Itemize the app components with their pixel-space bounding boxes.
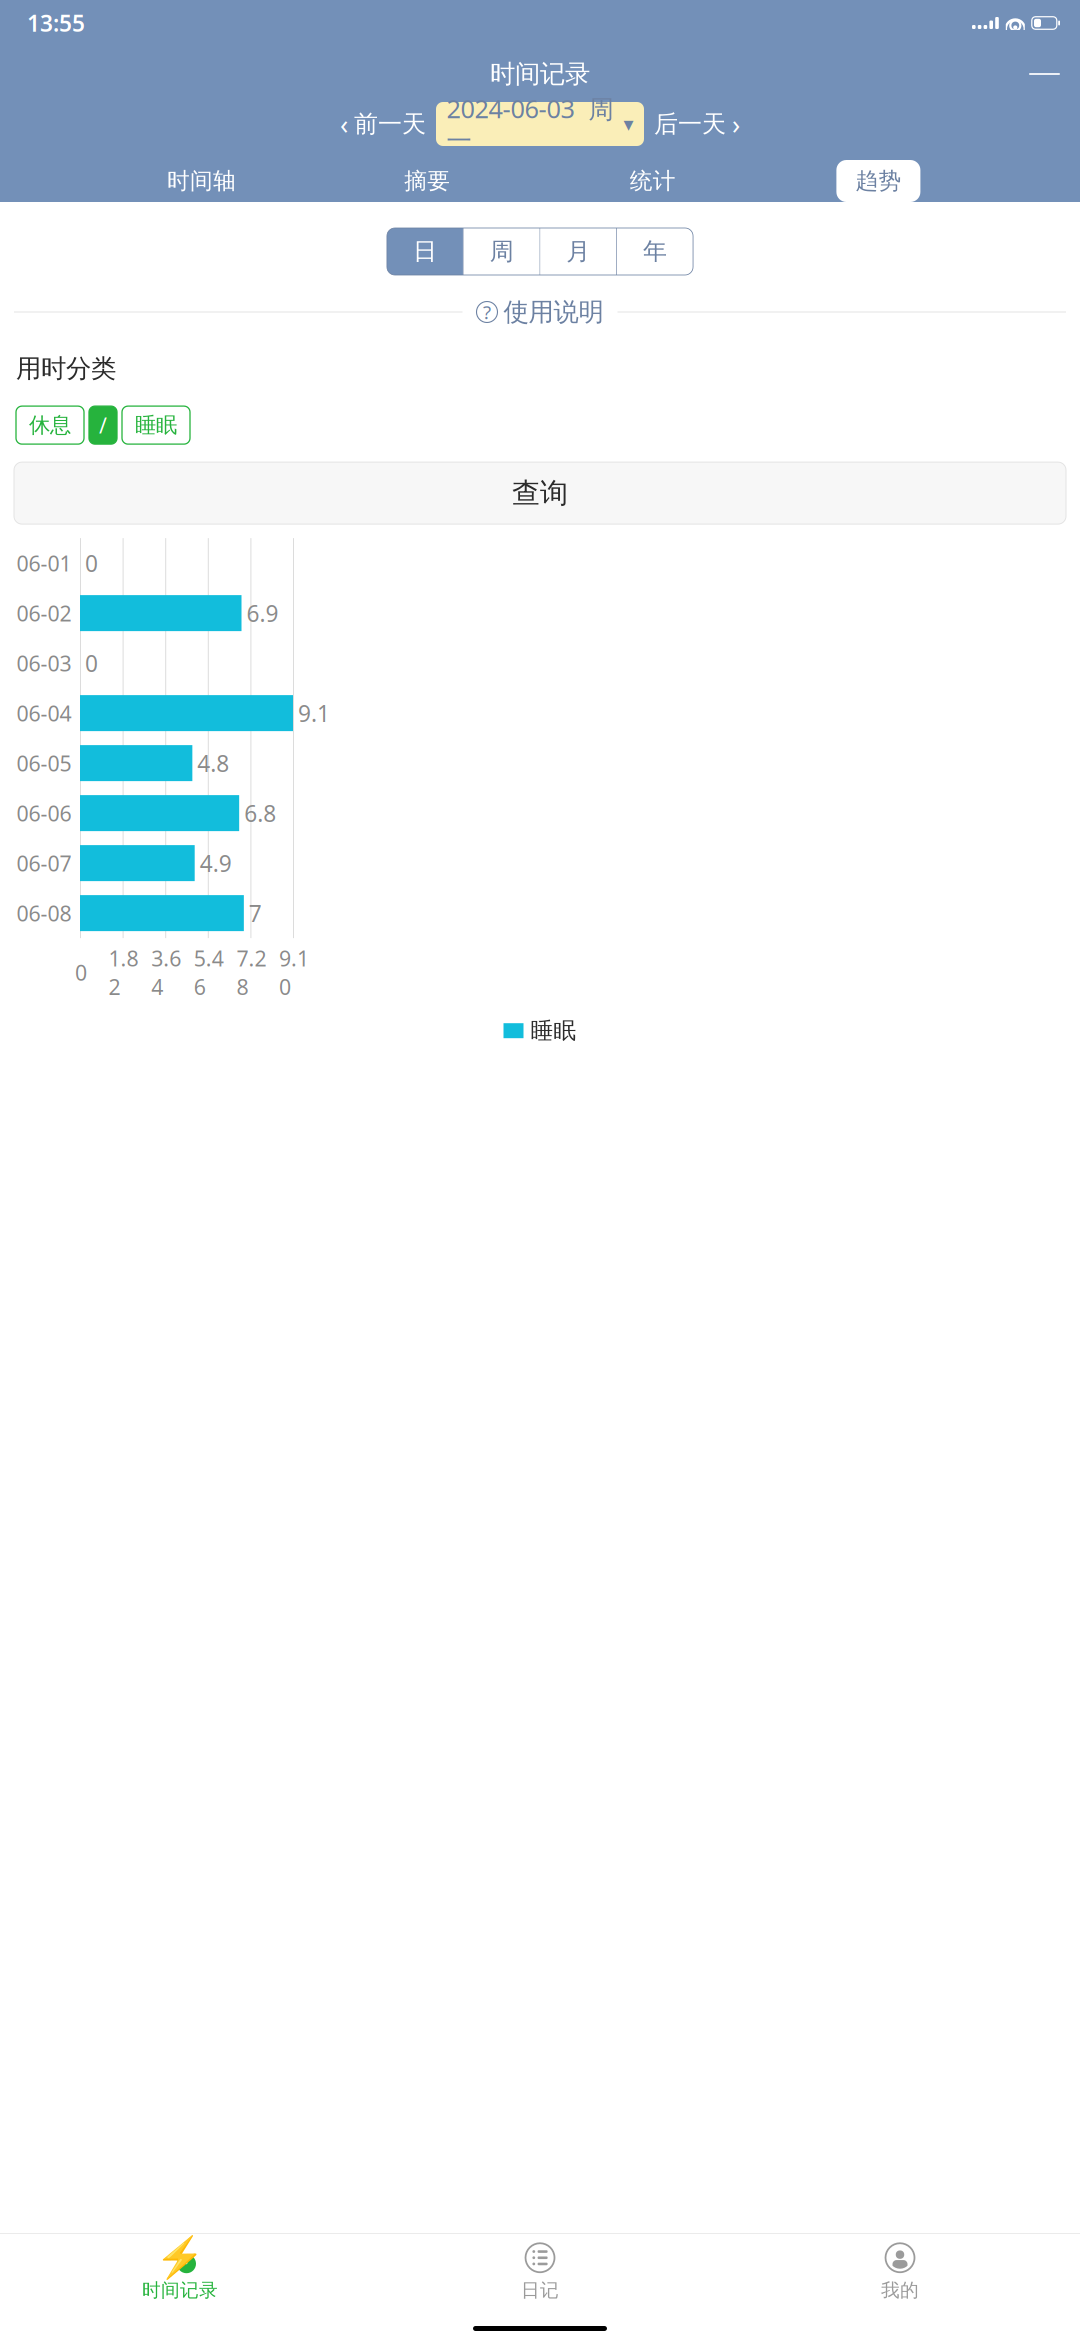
staticText: 摘要	[404, 167, 450, 195]
staticText: 13:55	[27, 8, 85, 38]
button[interactable]: ?	[462, 296, 617, 327]
staticText: 时间记录	[490, 58, 590, 89]
staticText: 6.9	[246, 598, 278, 628]
staticText: 我的	[881, 2279, 919, 2302]
staticText: /	[99, 411, 107, 439]
staticText: 9.10	[279, 944, 309, 1001]
staticText: ▾	[623, 113, 633, 135]
staticText: 06-08	[16, 899, 71, 927]
button[interactable]: 日	[387, 228, 463, 275]
button[interactable]: 趋势	[836, 160, 920, 202]
staticText: 时间记录	[142, 2279, 218, 2302]
button[interactable]: 日记	[360, 2234, 720, 2302]
staticText: 2024-06-03 周一	[446, 92, 613, 156]
staticText: 前一天	[354, 109, 426, 139]
button[interactable]: 睡眠	[122, 406, 190, 444]
staticText: 06-04	[16, 699, 71, 727]
staticText: 4.8	[197, 748, 229, 778]
button[interactable]: 统计	[611, 160, 695, 202]
staticText: 0	[85, 548, 98, 578]
staticText: 7.28	[236, 944, 266, 1001]
staticText: ‹	[340, 106, 348, 142]
staticText: 06-01	[16, 549, 71, 577]
staticText: 查询	[512, 476, 568, 510]
staticText: 趋势	[855, 167, 901, 195]
staticText: ›	[732, 106, 740, 142]
button[interactable]: 查询	[14, 462, 1066, 524]
staticText: 5.46	[194, 944, 224, 1001]
staticText: 时间轴	[167, 167, 236, 195]
staticText: 1.82	[109, 944, 139, 1001]
button[interactable]: 摘要	[385, 160, 469, 202]
staticText: 年	[643, 237, 667, 266]
staticText: 06-07	[16, 849, 71, 877]
staticText: 7	[249, 898, 262, 928]
staticText: 统计	[630, 167, 676, 195]
button[interactable]: 年	[617, 228, 693, 275]
button[interactable]: 休息	[16, 406, 84, 444]
staticText: 0	[85, 648, 98, 678]
staticText: 06-06	[16, 799, 71, 827]
staticText: 06-02	[16, 599, 71, 627]
staticText: 6.8	[244, 798, 276, 828]
staticText: 0	[75, 958, 87, 987]
staticText: ⚡	[155, 2235, 205, 2281]
staticText: 4.9	[200, 848, 232, 878]
button[interactable]: /	[89, 406, 117, 444]
staticText: 睡眠	[135, 412, 177, 438]
staticText: 3.64	[151, 944, 181, 1001]
staticText: 休息	[29, 412, 71, 438]
staticText: 使用说明	[503, 296, 603, 327]
staticText: 9.1	[298, 698, 330, 728]
button[interactable]: 周	[464, 228, 540, 275]
staticText: 后一天	[654, 109, 726, 139]
staticText: 睡眠	[530, 1017, 576, 1045]
button[interactable]: 2024-06-03 周一	[436, 102, 644, 146]
button[interactable]: ⚡	[0, 2234, 360, 2302]
button[interactable]: 我的	[720, 2234, 1080, 2302]
staticText: 06-03	[16, 649, 71, 677]
staticText: 月	[566, 237, 590, 266]
staticText: 日记	[521, 2279, 559, 2302]
button[interactable]: 后一天	[644, 102, 762, 146]
staticText: 周	[490, 237, 514, 266]
button[interactable]: ‹	[318, 102, 436, 146]
button[interactable]: 扫一扫	[1029, 58, 1060, 90]
staticText: 日	[413, 237, 437, 266]
button[interactable]: 月	[540, 228, 616, 275]
staticText: 用时分类	[16, 353, 116, 384]
button[interactable]: 时间轴	[160, 160, 244, 202]
staticText: 06-05	[16, 749, 71, 777]
staticText: ?	[483, 300, 491, 324]
